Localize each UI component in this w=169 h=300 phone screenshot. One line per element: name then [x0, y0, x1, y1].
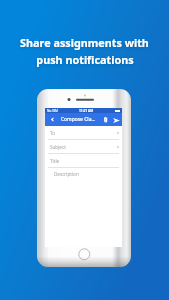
button[interactable]: Title — [45, 154, 122, 168]
staticText: No SIM — [47, 109, 58, 113]
staticText: push notifications — [36, 52, 134, 67]
button[interactable]: To — [45, 126, 122, 140]
button[interactable]: Send — [112, 116, 120, 124]
button[interactable]: Attach file — [102, 116, 109, 123]
button[interactable]: Back — [49, 116, 56, 123]
staticText: Compose Cla... — [61, 116, 96, 123]
staticText: Title — [50, 158, 60, 164]
staticText: To — [50, 130, 56, 136]
staticText: Share assignments with — [20, 35, 149, 50]
staticText: Subject — [50, 144, 66, 150]
staticText: 11:21 AM — [79, 109, 94, 113]
button[interactable]: Subject — [45, 140, 122, 154]
staticText: Description — [54, 171, 79, 177]
